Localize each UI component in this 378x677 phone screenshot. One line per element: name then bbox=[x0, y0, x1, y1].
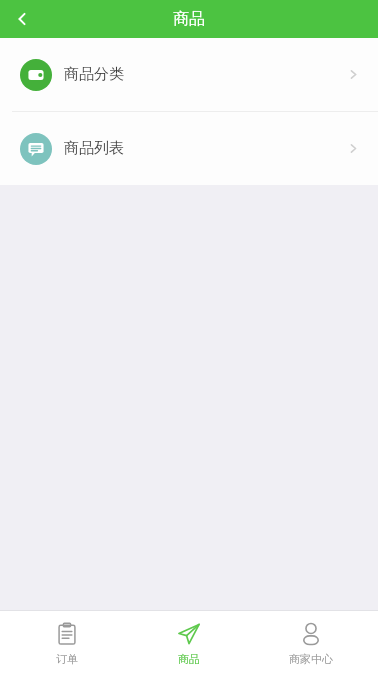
staticText: 商品分类 bbox=[64, 65, 124, 84]
staticText: 商品 bbox=[173, 9, 205, 29]
button[interactable]: 订单 bbox=[12, 616, 122, 672]
staticText: 商家中心 bbox=[289, 652, 333, 666]
button[interactable]: Back bbox=[0, 0, 44, 38]
staticText: 订单 bbox=[56, 652, 78, 666]
button[interactable]: 商品分类 bbox=[0, 38, 378, 111]
staticText: 商品列表 bbox=[64, 139, 124, 158]
button[interactable]: 商品 bbox=[134, 616, 244, 672]
button[interactable]: 商品列表 bbox=[0, 112, 378, 185]
button[interactable]: 商家中心 bbox=[256, 616, 366, 672]
staticText: 商品 bbox=[178, 652, 200, 666]
